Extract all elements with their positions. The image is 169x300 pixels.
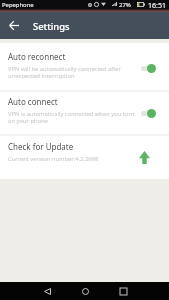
staticText: Current version number:4.2.2698 xyxy=(8,156,99,163)
button[interactable]: Check for Update xyxy=(0,133,169,178)
button[interactable]: Recents xyxy=(114,282,132,300)
staticText: Settings xyxy=(33,20,70,33)
staticText: Auto connect xyxy=(8,96,58,107)
staticText: VPN is automatically connected when you … xyxy=(8,111,135,125)
staticText: 16:51 xyxy=(148,1,166,10)
button[interactable]: Auto connect xyxy=(0,88,169,133)
button[interactable]: Auto reconnect xyxy=(0,43,169,88)
staticText: VPN will be automatically connected afte… xyxy=(8,66,121,80)
button[interactable]: Back xyxy=(4,15,24,35)
staticText: Auto reconnect xyxy=(8,51,66,62)
button[interactable]: Back xyxy=(38,282,56,300)
staticText: 27% xyxy=(119,1,131,9)
staticText: Pepephone xyxy=(2,1,34,9)
staticText: Check for Update xyxy=(8,141,74,152)
button[interactable]: Home xyxy=(76,282,94,300)
